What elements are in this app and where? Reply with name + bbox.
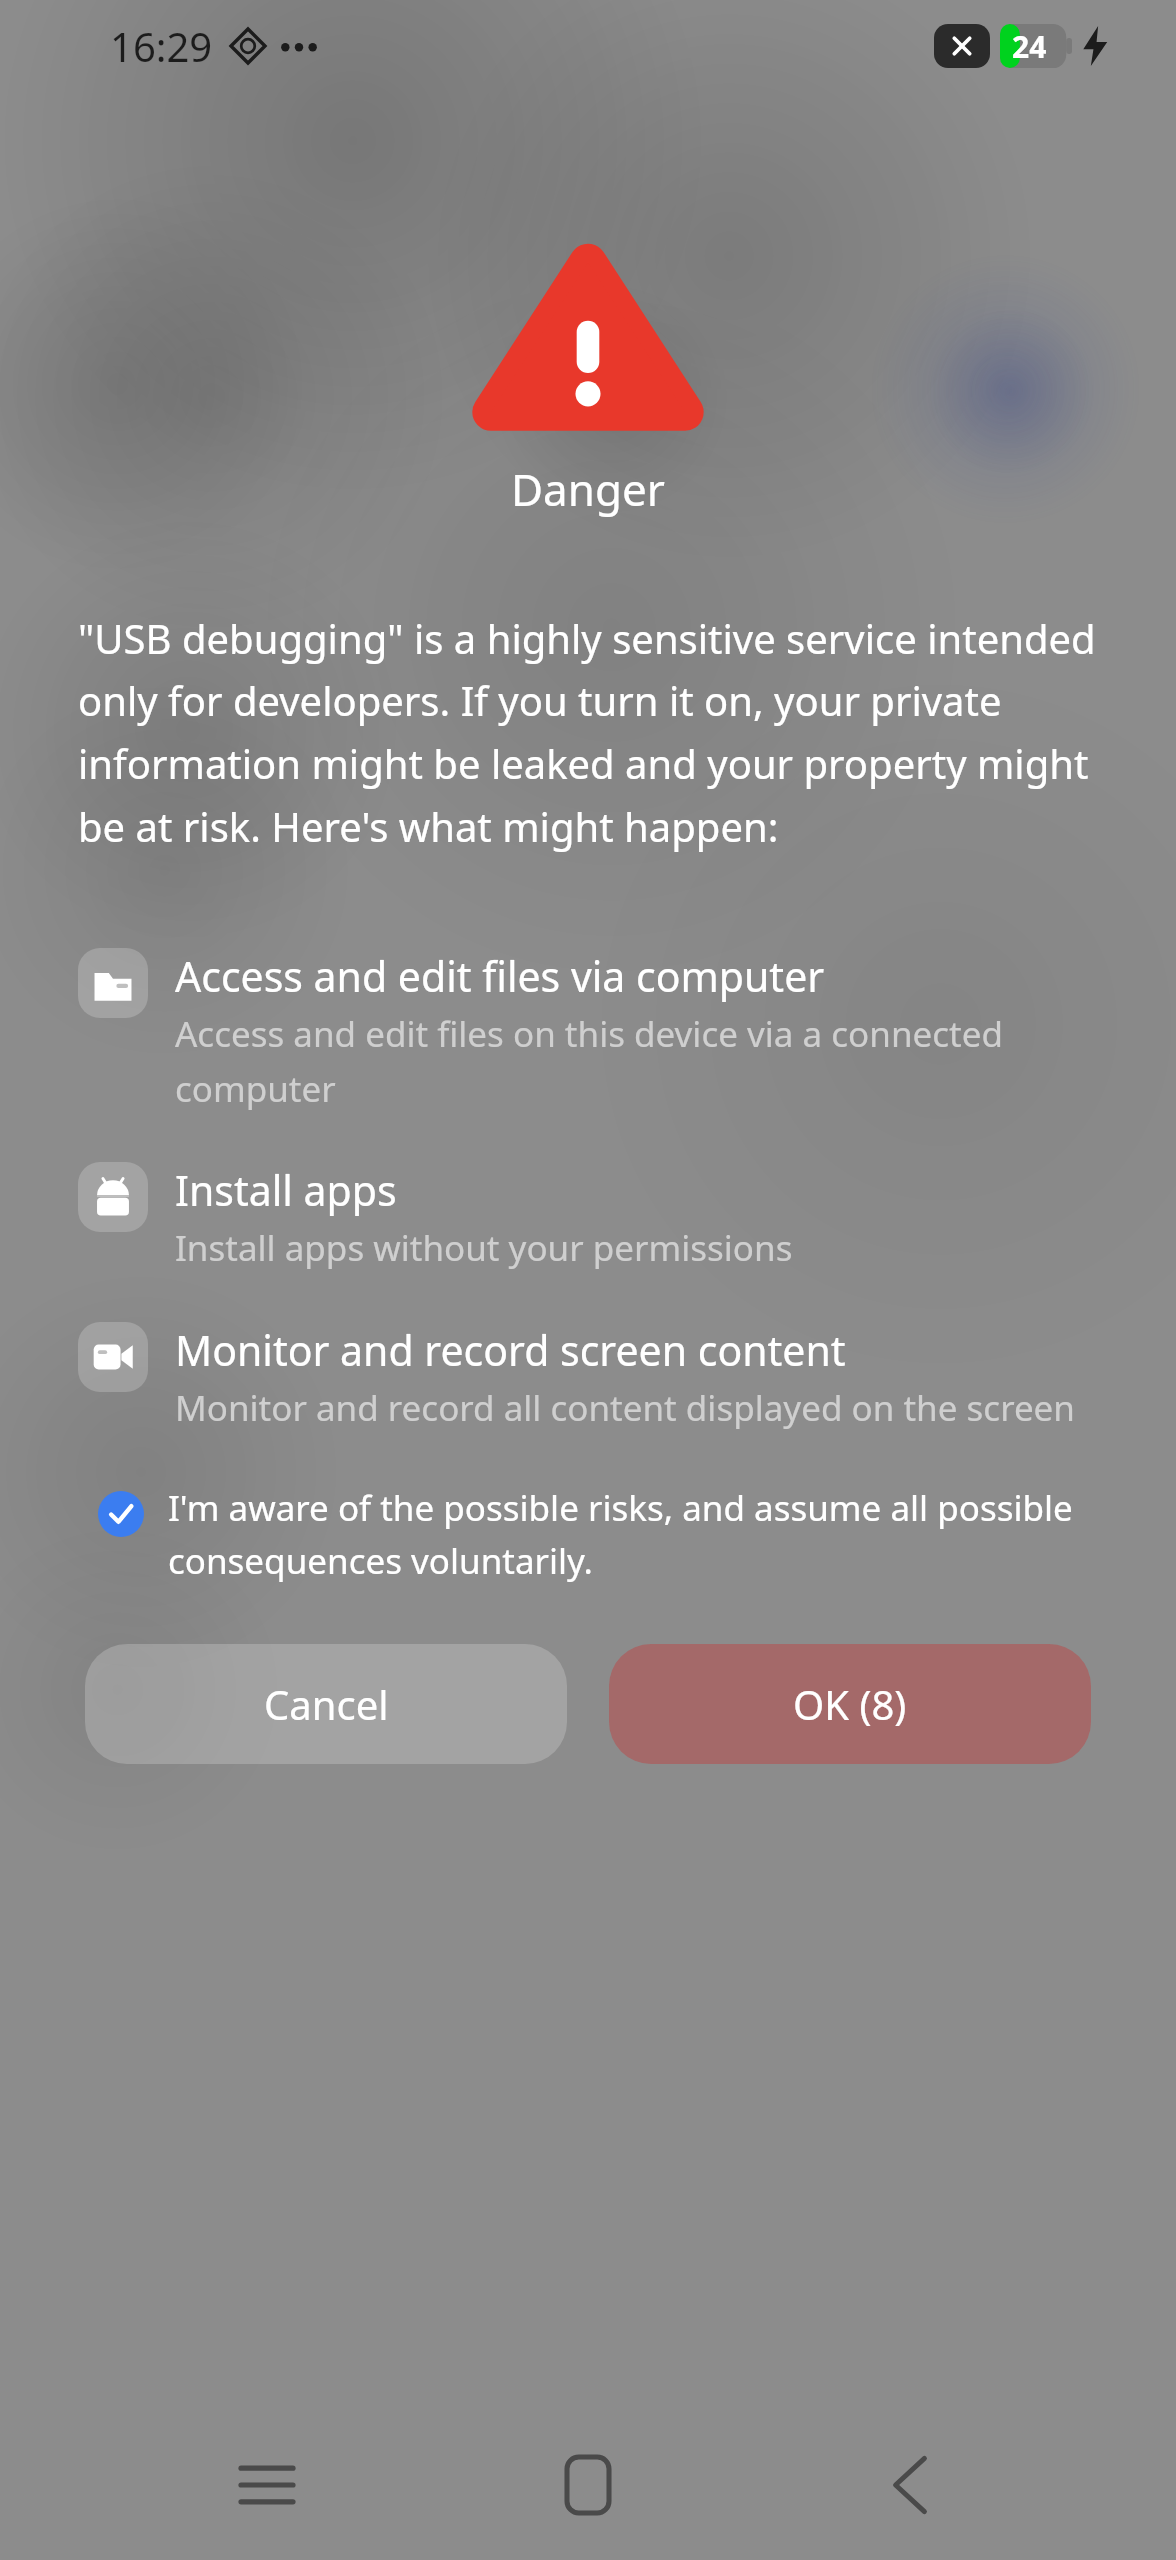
staticText: Access and edit files on this device via… <box>175 1010 1108 1112</box>
staticText: Install apps <box>175 1162 397 1218</box>
button[interactable]: Back <box>855 2430 965 2540</box>
button[interactable]: Access and edit files via computer <box>0 948 1176 1112</box>
staticText: 24 <box>1012 26 1047 67</box>
button[interactable]: Install apps <box>0 1162 1176 1272</box>
button[interactable]: Recent apps <box>212 2430 322 2540</box>
button[interactable]: I'm aware of the possible risks, and ass… <box>0 1484 1176 1584</box>
button[interactable]: OK (8) <box>609 1644 1091 1764</box>
staticText: I'm aware of the possible risks, and ass… <box>168 1484 1104 1584</box>
button[interactable]: Cancel <box>85 1644 567 1764</box>
staticText: Cancel <box>264 1677 389 1731</box>
staticText: OK (8) <box>793 1677 907 1731</box>
staticText: Danger <box>0 459 1176 519</box>
staticText: Access and edit files via computer <box>175 948 825 1004</box>
staticText: 16:29 <box>110 19 213 73</box>
staticText: Install apps without your permissions <box>175 1224 793 1272</box>
staticText: Monitor and record screen content <box>175 1322 846 1378</box>
staticText: Monitor and record all content displayed… <box>175 1384 1075 1432</box>
button[interactable]: Monitor and record screen content <box>0 1322 1176 1432</box>
staticText: "USB debugging" is a highly sensitive se… <box>78 611 1108 854</box>
button[interactable]: Home <box>533 2430 643 2540</box>
